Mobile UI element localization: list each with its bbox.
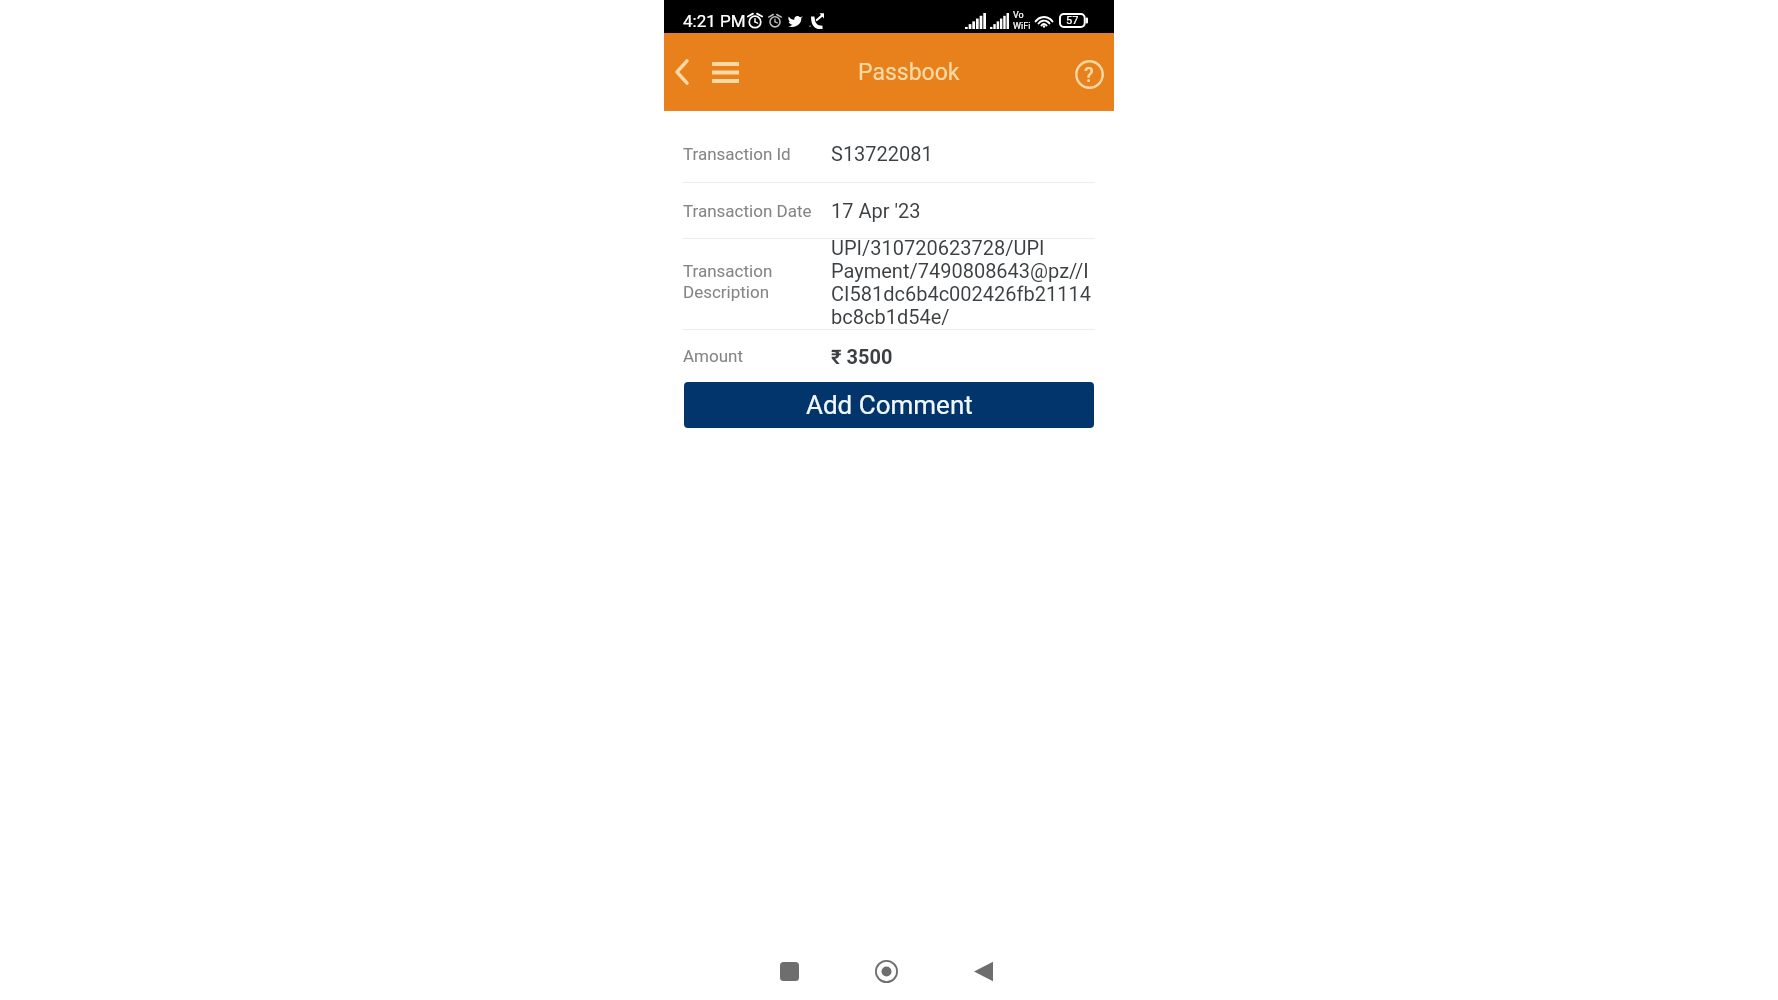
staticText: CI581dc6b4c002426fb21114 (831, 282, 1091, 305)
staticText: Add Comment (806, 390, 973, 420)
button[interactable]: Add Comment (684, 382, 1094, 428)
button[interactable]: Back (664, 54, 700, 90)
staticText: Transaction Date (683, 201, 831, 221)
staticText: S13722081 (831, 142, 933, 165)
button[interactable]: Recent apps (765, 947, 814, 996)
staticText: UPI/310720623728/UPI (831, 236, 1045, 259)
staticText: Vo (1013, 10, 1024, 21)
staticText: Passbook (858, 59, 960, 86)
staticText: Amount (683, 346, 831, 366)
staticText: ? (1084, 63, 1094, 86)
button[interactable]: Help (1070, 55, 1108, 93)
button[interactable]: Back (959, 947, 1008, 996)
staticText: 17 Apr '23 (831, 199, 921, 222)
staticText: ₹ 3500 (831, 345, 893, 368)
staticText: 4:21 PM (683, 11, 746, 31)
button[interactable]: Home (862, 947, 911, 996)
button[interactable]: Menu (705, 52, 745, 92)
staticText: Transaction Description (683, 261, 831, 303)
staticText: WiFi (1013, 21, 1031, 32)
staticText: Transaction Id (683, 144, 831, 164)
staticText: Payment/7490808643@pz//I (831, 259, 1089, 282)
staticText: 57 (1066, 14, 1079, 27)
staticText: bc8cb1d54e/ (831, 305, 950, 326)
